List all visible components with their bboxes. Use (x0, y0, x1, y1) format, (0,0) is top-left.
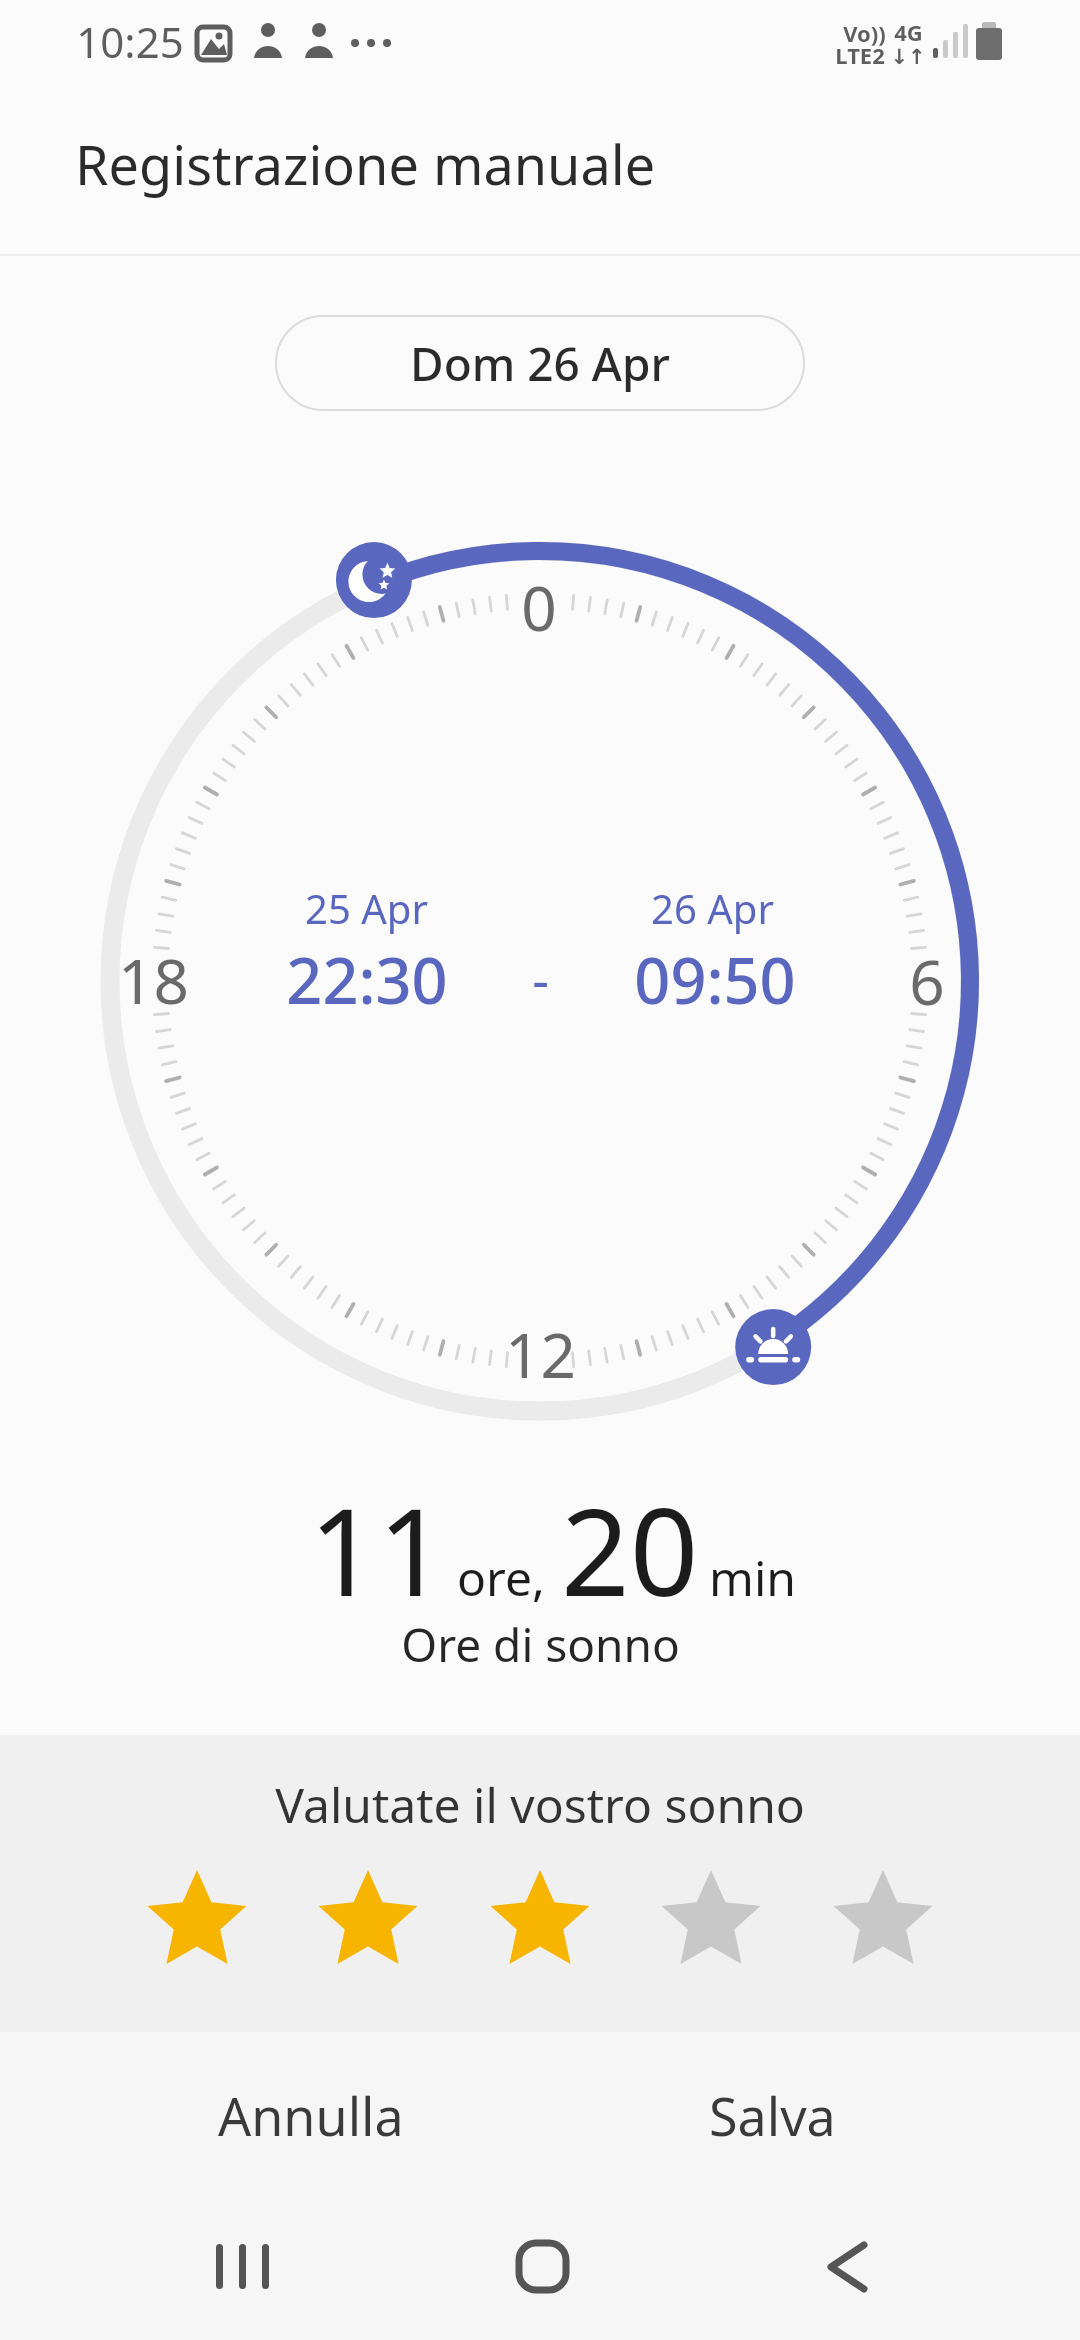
staticText: min (709, 1545, 796, 1610)
button[interactable]: Annulla (75, 2050, 547, 2180)
staticText: LTE2 (835, 40, 885, 70)
staticText: - (532, 943, 549, 1014)
button[interactable]: Dom 26 Apr (275, 315, 805, 411)
button[interactable] (720, 2220, 1080, 2340)
staticText: 12 (505, 1312, 576, 1396)
staticText: 0 (521, 565, 557, 649)
button[interactable]: Salva (536, 2050, 1008, 2180)
staticText: 18 (118, 938, 189, 1022)
button[interactable] (0, 0, 1080, 2340)
staticText: 20 (561, 1468, 699, 1598)
staticText: 10:25 (76, 13, 184, 70)
staticText: 4G (894, 17, 923, 47)
staticText: 11 (309, 1468, 447, 1598)
button[interactable] (455, 1860, 627, 1984)
staticText: ↓↑ (890, 45, 926, 69)
button[interactable] (799, 1860, 971, 1984)
staticText: 6 (909, 939, 945, 1023)
staticText: ore, (457, 1545, 545, 1610)
button[interactable] (360, 2220, 720, 2340)
staticText: Vo)) (843, 18, 886, 48)
staticText: Ore di sonno (401, 1613, 680, 1676)
staticText: 22:30 (286, 937, 448, 1023)
button[interactable] (0, 2220, 360, 2340)
staticText: Registrazione manuale (75, 127, 656, 201)
staticText: 09:50 (634, 937, 796, 1023)
staticText: 25 Apr (305, 881, 428, 935)
staticText: Dom 26 Apr (410, 332, 670, 395)
staticText: 26 Apr (651, 881, 774, 935)
button[interactable] (111, 1860, 283, 1984)
button[interactable] (627, 1860, 799, 1984)
staticText: Salva (709, 2080, 836, 2151)
staticText: Annulla (218, 2080, 404, 2151)
button[interactable] (283, 1860, 455, 1984)
staticText: Valutate il vostro sonno (275, 1772, 805, 1837)
